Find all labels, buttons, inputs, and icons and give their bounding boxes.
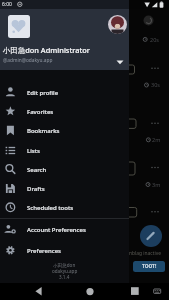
staticText: nblag inactive <box>129 250 161 257</box>
button[interactable]: Account Preferences <box>0 220 129 239</box>
staticText: 2m <box>152 136 161 143</box>
button[interactable] <box>30 284 46 299</box>
button[interactable]: TOOT! <box>133 261 165 272</box>
staticText: Preferences <box>27 247 62 255</box>
button[interactable]: Preferences <box>0 241 129 260</box>
staticText: Edit profile <box>27 89 59 97</box>
button[interactable]: Search <box>0 160 129 179</box>
staticText: 3.1.4 <box>59 274 70 280</box>
button[interactable] <box>150 286 164 298</box>
button[interactable] <box>140 225 162 247</box>
staticText: Scheduled toots <box>27 204 74 212</box>
button[interactable] <box>8 15 30 38</box>
staticText: TOOT! <box>142 263 157 270</box>
button[interactable]: Edit profile <box>0 83 129 102</box>
staticText: Favorites <box>27 108 54 116</box>
staticText: Drafts <box>27 185 45 193</box>
button[interactable]: Scheduled toots <box>0 198 129 217</box>
button[interactable]: Lists <box>0 141 129 160</box>
staticText: 6:00 <box>2 1 12 8</box>
button[interactable] <box>114 56 126 68</box>
staticText: 小田急don <box>53 262 76 268</box>
staticText: 小田急don Administrator <box>3 45 90 55</box>
staticText: @admin@odakyu.app <box>3 57 53 64</box>
staticText: Lists <box>27 147 40 155</box>
button[interactable] <box>108 15 127 34</box>
button[interactable]: Drafts <box>0 179 129 198</box>
staticText: 3m <box>152 181 161 188</box>
staticText: Search <box>27 166 47 174</box>
button[interactable] <box>82 284 98 299</box>
staticText: Bookmarks <box>27 127 60 135</box>
staticText: odakyu.app <box>52 268 78 274</box>
button[interactable]: Favorites <box>0 102 129 121</box>
staticText: 20s <box>150 36 159 43</box>
button[interactable]: Bookmarks <box>0 121 129 140</box>
staticText: Account Preferences <box>27 226 86 234</box>
staticText: 30s <box>151 81 160 88</box>
button[interactable] <box>127 284 143 299</box>
